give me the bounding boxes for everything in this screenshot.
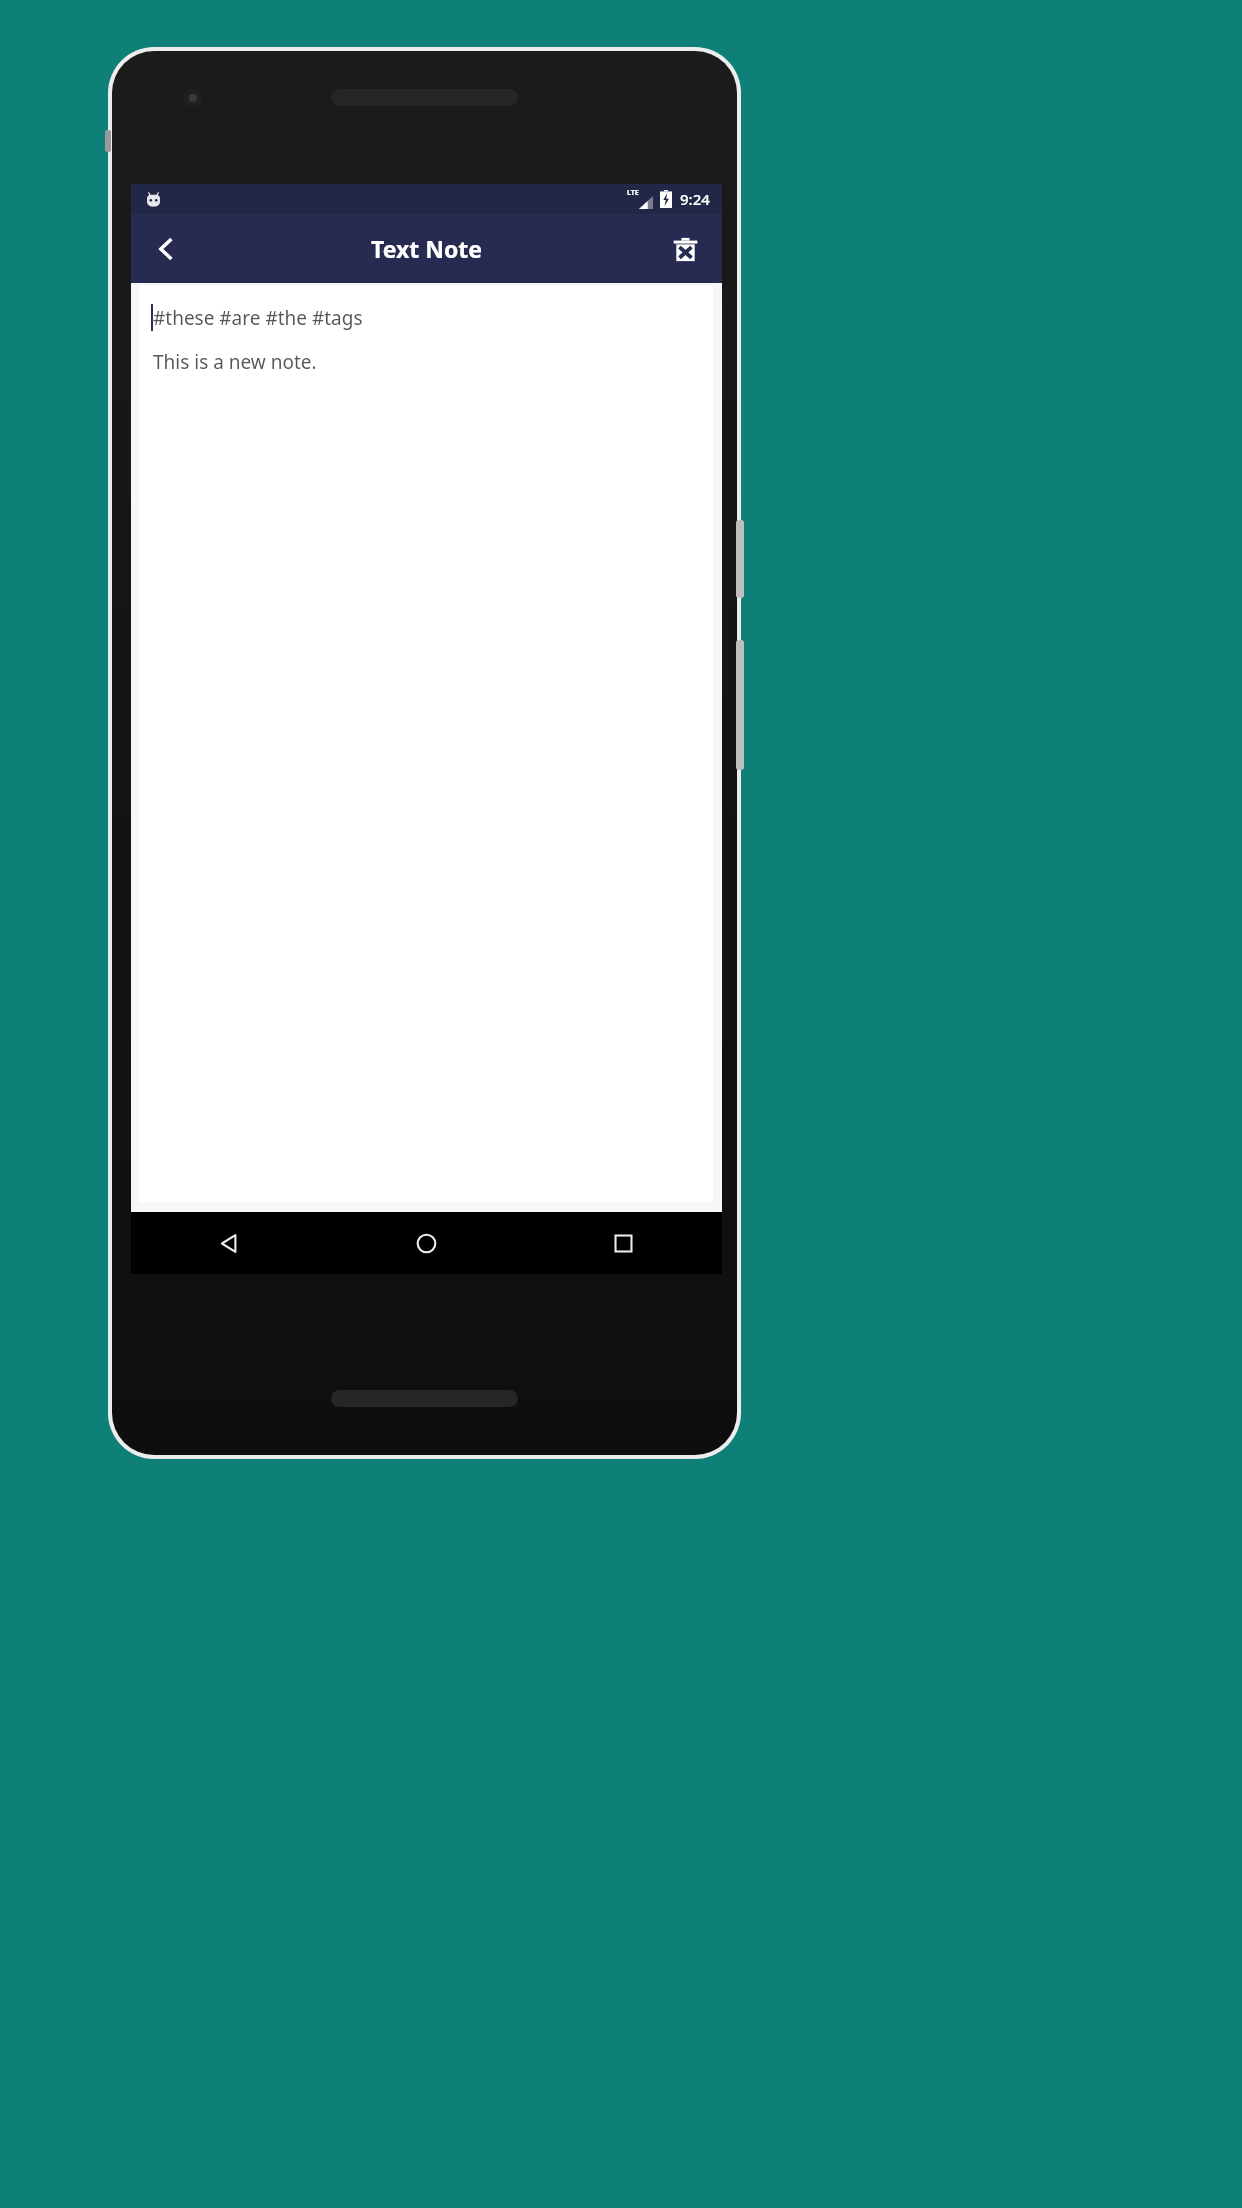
staticText: LTE [627,188,639,198]
staticText: #these #are #the #tags [153,305,363,331]
button[interactable]: Back [139,222,193,276]
staticText: Text Note [371,233,482,264]
button[interactable]: Back [131,1212,328,1274]
staticText: This is a new note. [153,349,317,375]
button[interactable]: Recent apps [525,1212,722,1274]
button[interactable]: #these #are #the #tags [139,286,713,1202]
button[interactable]: Home [328,1212,525,1274]
staticText: 9:24 [680,189,710,209]
button[interactable]: Delete note [658,222,712,276]
